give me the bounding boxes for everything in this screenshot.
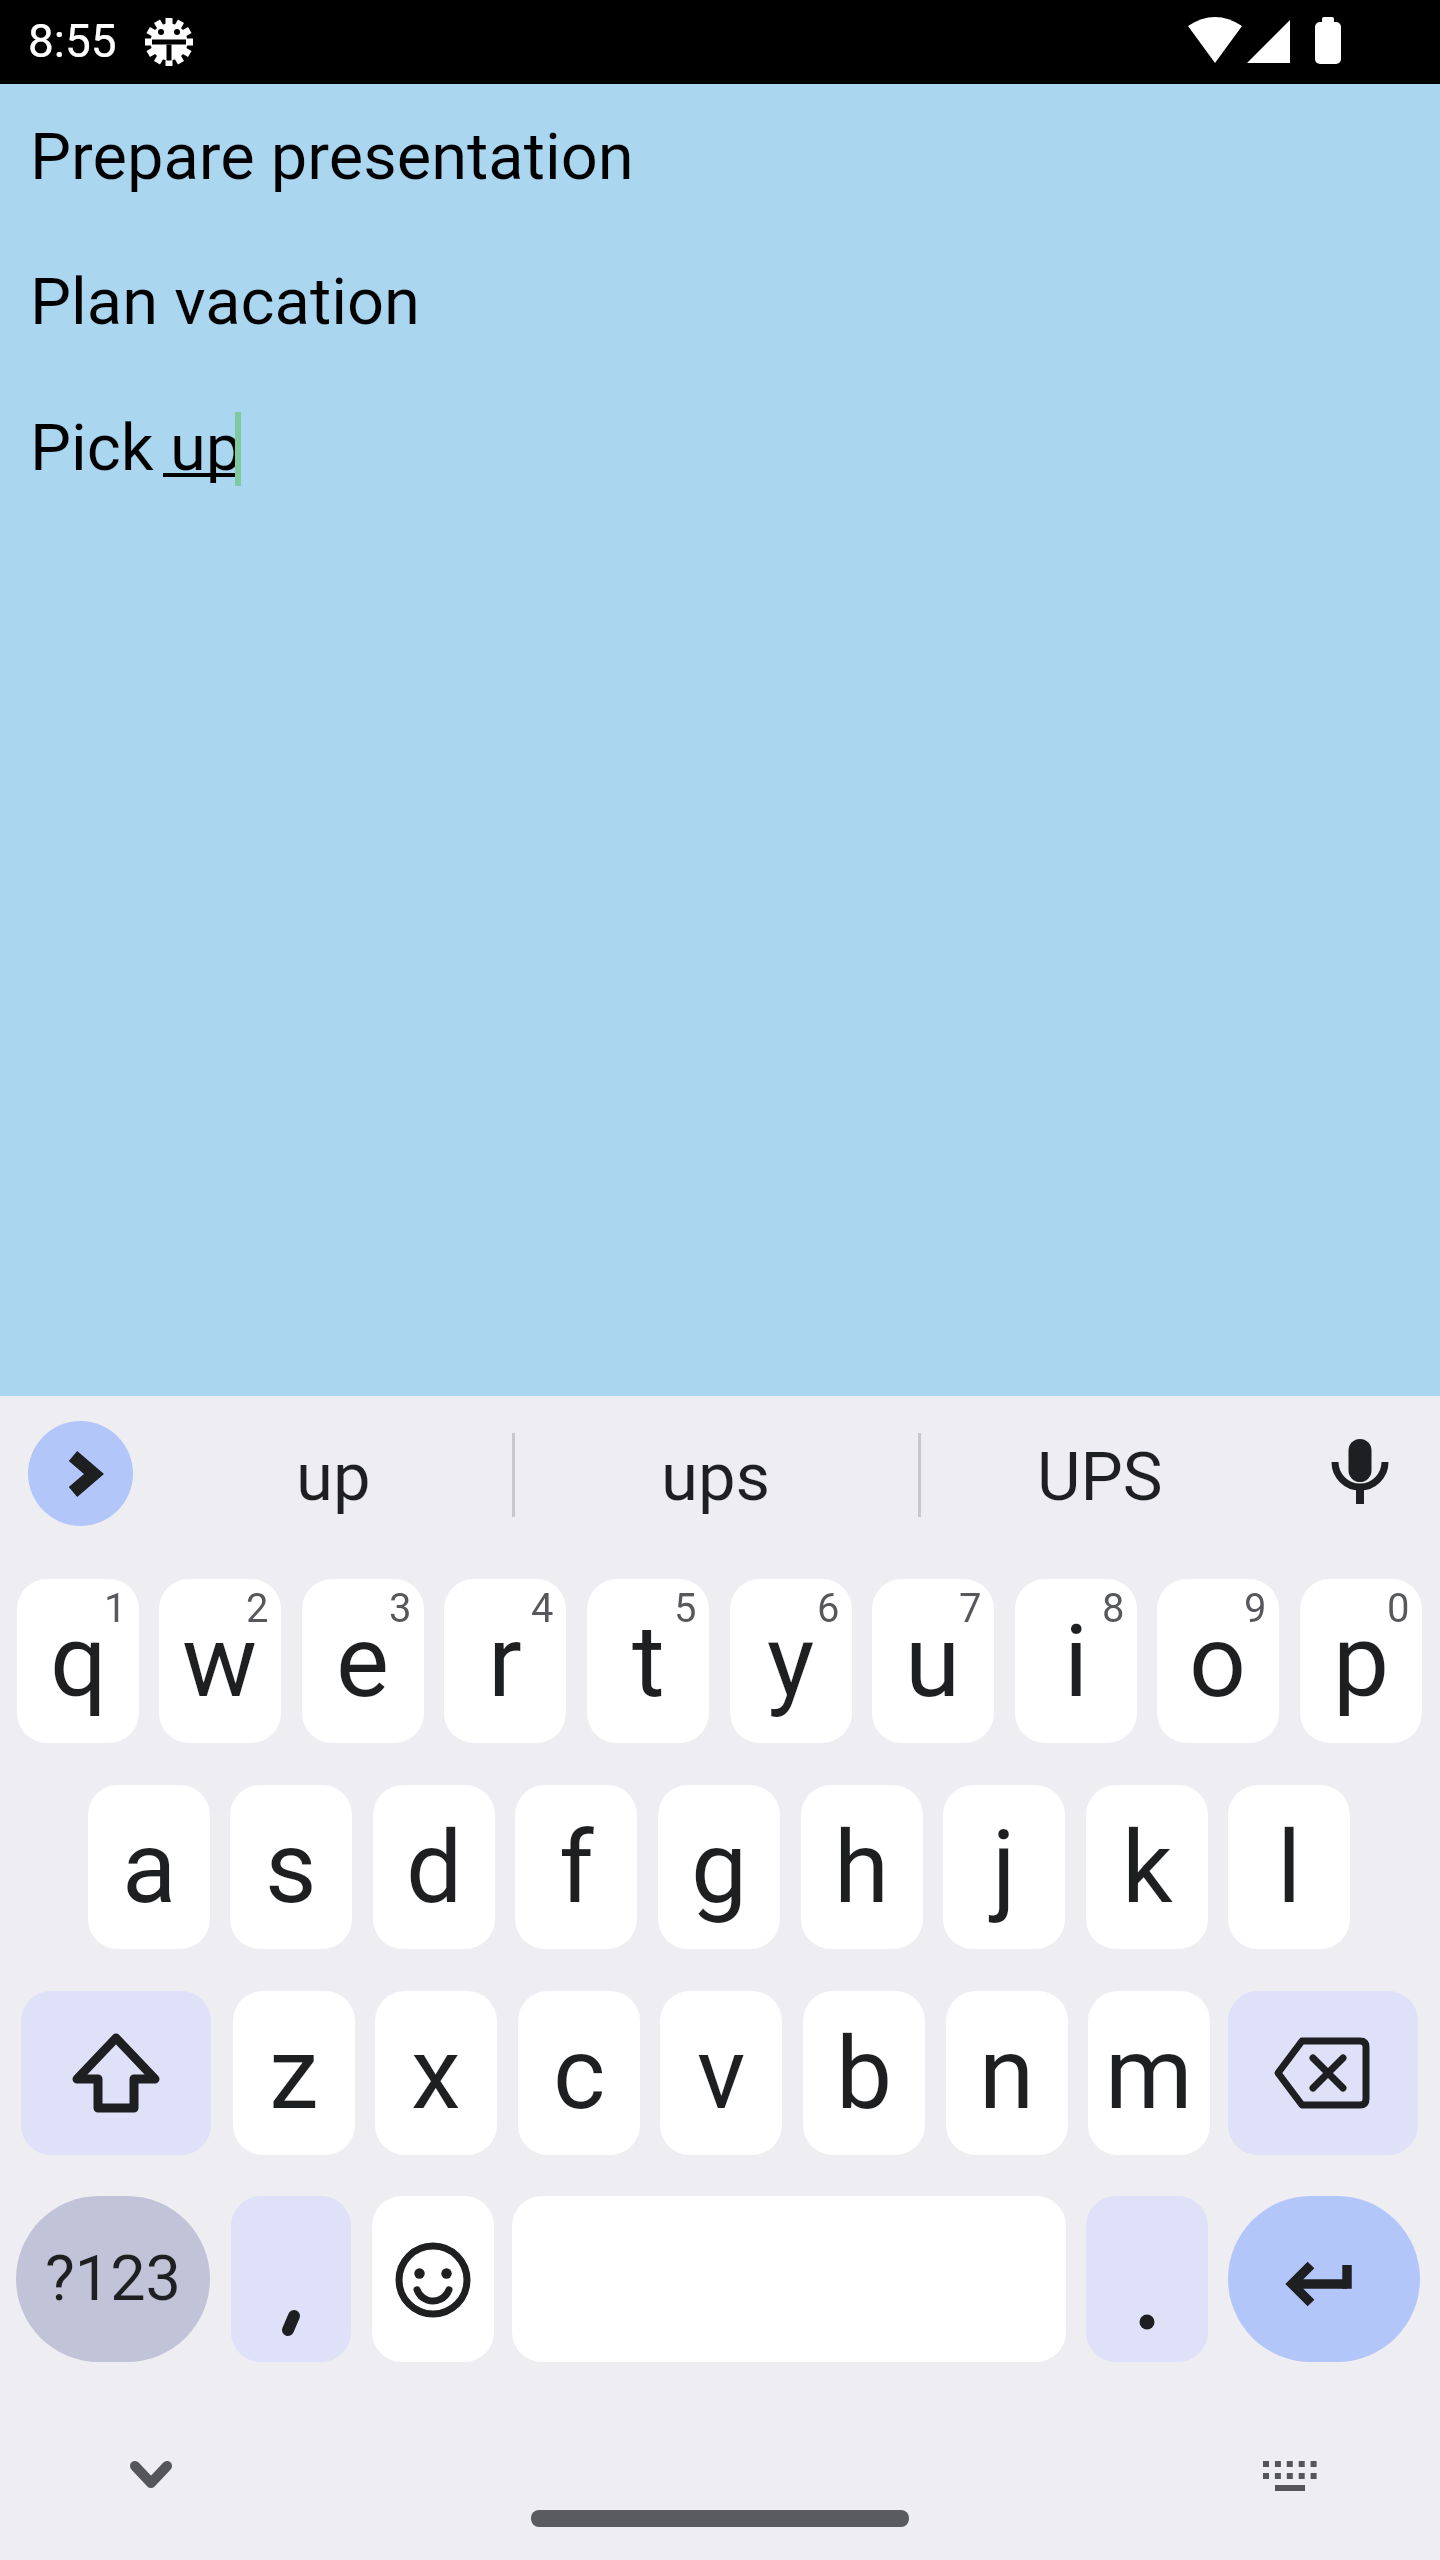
staticText: r [488,1603,522,1720]
staticText: 5 [674,1585,697,1632]
button[interactable]: Prepare presentation [0,84,1440,1396]
staticText: i [1064,1603,1089,1720]
staticText: o [1189,1603,1247,1720]
button[interactable]: UPS [922,1396,1278,1558]
staticText: UPS [1037,1438,1163,1517]
button[interactable]: l [1228,1785,1350,1949]
button[interactable]: h [801,1785,923,1949]
staticText: b [836,2015,893,2132]
staticText: g [691,1809,748,1926]
button[interactable]: k [1086,1785,1208,1949]
button[interactable]: b [803,1991,925,2155]
staticText: Prepare presentation [30,119,634,195]
staticText: Plan vacation [30,264,420,340]
button[interactable] [91,2416,211,2536]
staticText: k [1122,1809,1173,1926]
staticText: 1 [104,1585,127,1632]
button[interactable]: j [943,1785,1065,1949]
button[interactable] [1236,2416,1344,2536]
button[interactable] [21,1991,211,2155]
staticText: t [632,1603,665,1720]
staticText: a [122,1809,177,1926]
button[interactable]: m [1088,1991,1210,2155]
button[interactable] [231,2196,351,2362]
staticText: ups [661,1438,771,1517]
button[interactable] [1300,1417,1420,1537]
button[interactable]: ?123 [16,2196,210,2362]
button[interactable]: n [946,1991,1068,2155]
staticText: 6 [817,1585,840,1632]
button[interactable] [1228,2196,1420,2362]
button[interactable] [28,1421,133,1526]
button[interactable]: t [587,1579,709,1743]
button[interactable]: u [872,1579,994,1743]
staticText: u [905,1603,961,1720]
button[interactable]: x [375,1991,497,2155]
button[interactable]: p [1300,1579,1422,1743]
button[interactable] [1086,2196,1208,2362]
staticText: 4 [531,1585,554,1632]
staticText: ?123 [45,2242,181,2316]
button[interactable]: o [1157,1579,1279,1743]
staticText: f [559,1809,594,1926]
staticText: v [697,2015,746,2132]
button[interactable]: e [302,1579,424,1743]
staticText: n [979,2015,1035,2132]
button[interactable] [1228,1991,1418,2155]
button[interactable] [372,2196,494,2362]
button[interactable]: c [518,1991,640,2155]
button[interactable]: s [230,1785,352,1949]
staticText: h [834,1809,890,1926]
button[interactable]: f [515,1785,637,1949]
staticText: s [265,1809,317,1926]
staticText: x [411,2015,461,2132]
staticText: 2 [246,1585,269,1632]
staticText: l [1277,1809,1302,1926]
staticText: d [406,1809,463,1926]
button[interactable]: g [658,1785,780,1949]
staticText: j [992,1809,1016,1926]
button[interactable]: a [88,1785,210,1949]
button[interactable]: up [153,1396,513,1558]
staticText: up [296,1438,371,1517]
button[interactable]: q [17,1579,139,1743]
button[interactable]: i [1015,1579,1137,1743]
staticText: p [1333,1603,1390,1720]
staticText: 9 [1244,1585,1267,1632]
staticText: m [1105,2015,1193,2132]
button[interactable] [531,2510,909,2527]
staticText: z [269,2015,319,2132]
staticText: 8 [1102,1585,1125,1632]
staticText: 8:55 [28,14,117,68]
staticText: y [767,1603,815,1720]
button[interactable]: y [730,1579,852,1743]
button[interactable]: d [373,1785,495,1949]
staticText: w [182,1603,258,1720]
button[interactable]: r [444,1579,566,1743]
staticText: c [553,2015,606,2132]
button[interactable]: w [159,1579,281,1743]
staticText: 0 [1387,1585,1410,1632]
button[interactable]: z [233,1991,355,2155]
button[interactable]: ups [516,1396,916,1558]
staticText: q [50,1603,107,1720]
staticText: 3 [389,1585,412,1632]
staticText: 7 [959,1585,982,1632]
staticText: e [336,1603,390,1720]
staticText: Pick up [30,410,243,486]
button[interactable]: v [660,1991,782,2155]
